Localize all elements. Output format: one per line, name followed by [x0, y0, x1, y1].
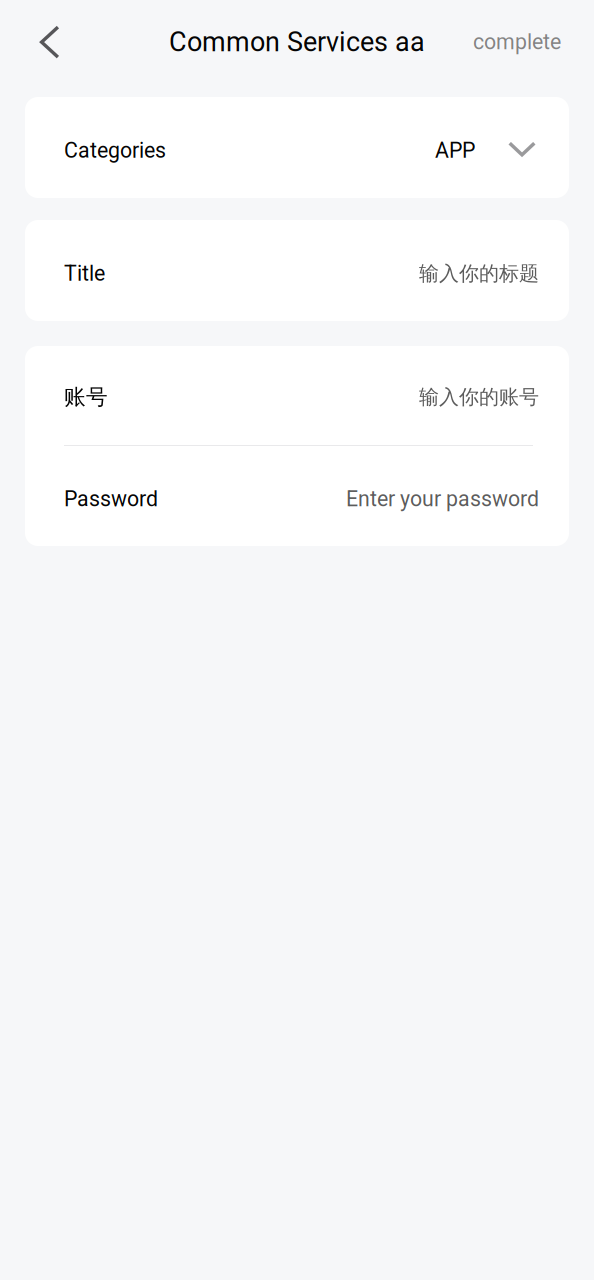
button[interactable]: Password	[25, 446, 569, 546]
button[interactable]: Categories	[25, 97, 569, 198]
button[interactable]: Title	[25, 220, 569, 321]
staticText: Title	[64, 261, 105, 286]
button[interactable]: 账号	[25, 346, 569, 445]
staticText: 输入你的账号	[419, 384, 539, 410]
staticText: 输入你的标题	[419, 261, 539, 286]
staticText: complete	[473, 29, 561, 54]
staticText: APP	[435, 138, 475, 163]
button[interactable]: Back	[0, 0, 83, 84]
staticText: Common Services aa	[169, 26, 425, 58]
button[interactable]: complete	[453, 0, 594, 84]
staticText: Enter your password	[346, 486, 539, 511]
staticText: 账号	[64, 383, 108, 411]
staticText: Password	[64, 486, 158, 511]
staticText: Categories	[64, 138, 166, 163]
